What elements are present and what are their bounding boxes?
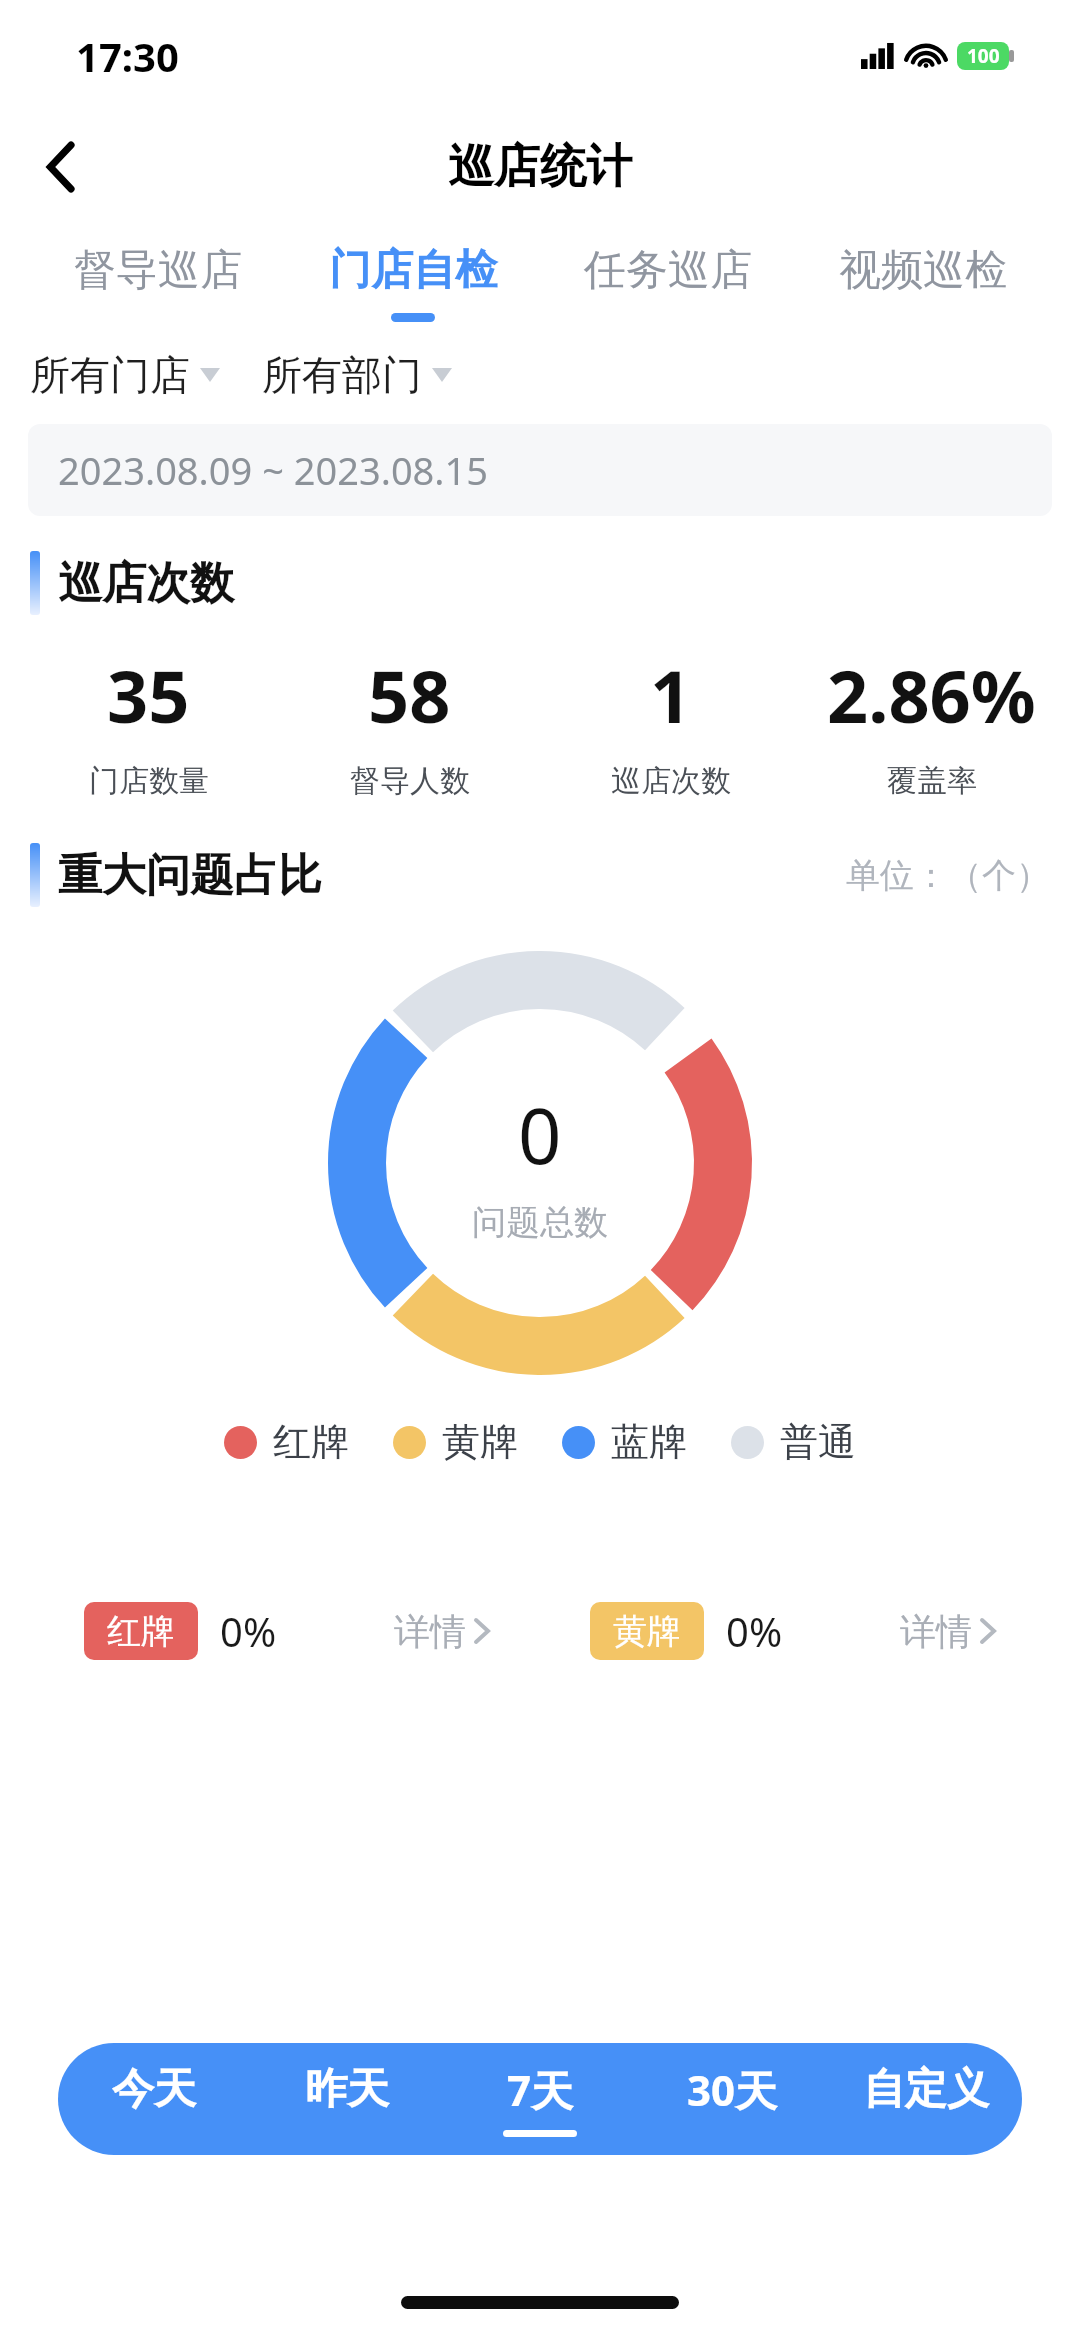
staticText: 巡店统计 [448,138,632,196]
staticText: 覆盖率 [887,762,977,800]
staticText: 红牌 [107,1610,175,1653]
staticText: 所有门店 [30,350,190,400]
staticText: 1 [650,646,692,744]
staticText: 17:30 [76,29,179,83]
staticText: 昨天 [305,2063,389,2116]
staticText: 详情 [900,1609,972,1654]
staticText: 问题总数 [472,1201,608,1244]
button[interactable]: 所有门店 [30,350,262,400]
staticText: 视频巡检 [839,244,1007,297]
staticText: 重大问题占比 [58,848,322,903]
button[interactable]: 黄牌 [562,1538,1024,1724]
button[interactable]: 所有部门 [262,350,494,400]
staticText: 所有部门 [262,350,422,400]
staticText: 蓝牌 [611,1418,687,1466]
staticText: 7天 [507,2061,574,2118]
staticText: 门店自检 [329,244,497,297]
button[interactable]: 30天 [636,2043,829,2155]
staticText: 今天 [112,2063,196,2116]
staticText: 2023.08.09 ~ 2023.08.15 [58,444,489,496]
button[interactable]: 门店自检 [285,222,540,342]
button[interactable]: Back [26,131,98,203]
staticText: 2.86% [827,646,1036,744]
staticText: 自定义 [863,2063,989,2116]
staticText: 0 [518,1083,562,1187]
button[interactable]: 自定义 [829,2043,1022,2155]
staticText: 巡店次数 [611,762,731,800]
staticText: 红牌 [273,1418,349,1466]
button[interactable]: 昨天 [250,2043,443,2155]
staticText: 任务巡店 [584,244,752,297]
button[interactable]: 视频巡检 [795,222,1050,342]
staticText: 0% [220,1604,277,1658]
button[interactable]: 7天 [443,2043,636,2155]
staticText: 巡店次数 [58,556,234,611]
staticText: 门店数量 [89,762,209,800]
staticText: 普通 [780,1418,856,1466]
staticText: 0% [726,1604,783,1658]
staticText: 30天 [687,2061,778,2118]
staticText: 100 [967,43,1000,69]
staticText: 单位：（个） [846,854,1050,897]
button[interactable]: 督导巡店 [30,222,285,342]
staticText: 35 [107,646,190,744]
staticText: 督导人数 [350,762,470,800]
staticText: 详情 [394,1609,466,1654]
button[interactable]: 今天 [58,2043,250,2155]
staticText: 黄牌 [442,1418,518,1466]
staticText: 58 [368,646,451,744]
button[interactable]: 红牌 [56,1538,518,1724]
button[interactable]: 2023.08.09 ~ 2023.08.15 [28,424,1052,516]
staticText: 黄牌 [613,1610,681,1653]
staticText: 督导巡店 [74,244,242,297]
button[interactable]: 任务巡店 [540,222,795,342]
